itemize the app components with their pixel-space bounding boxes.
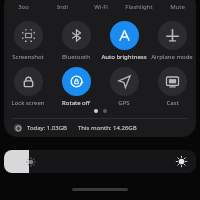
button[interactable]: Rotate off <box>52 67 100 107</box>
staticText: Airplane mode <box>151 53 193 61</box>
button[interactable]: Today: 1.03GB <box>4 119 196 137</box>
staticText: Screenshot <box>12 53 44 61</box>
staticText: Lock screen <box>11 99 45 107</box>
button[interactable]: Flashlight <box>120 1 158 13</box>
button[interactable]: Mute <box>158 1 196 13</box>
button[interactable]: Wi-Fi <box>82 1 120 13</box>
button[interactable]: Brightness <box>4 150 196 173</box>
staticText: Indi <box>57 3 68 11</box>
staticText: Mute <box>170 3 185 11</box>
staticText: 3oo <box>18 3 29 11</box>
staticText: Flashlight <box>125 3 153 11</box>
staticText: GPS <box>118 99 130 107</box>
staticText: Auto brightness <box>101 53 147 61</box>
staticText: This month: 14.26GB <box>78 124 137 132</box>
button[interactable]: Bluetooth <box>52 21 100 61</box>
staticText: Wi-Fi <box>94 3 108 11</box>
button[interactable]: Screenshot <box>4 21 52 61</box>
button[interactable]: Indi <box>43 1 82 13</box>
button[interactable]: GPS <box>100 67 148 107</box>
button[interactable]: Airplane mode <box>148 21 196 61</box>
staticText: Cast <box>166 99 179 107</box>
button[interactable]: Lock screen <box>4 67 52 107</box>
staticText: Today: 1.03GB <box>27 124 68 132</box>
button[interactable]: Auto brightness <box>100 21 148 61</box>
button[interactable]: Cast <box>148 67 196 107</box>
button[interactable]: 3oo <box>4 1 43 13</box>
staticText: Bluetooth <box>62 53 90 61</box>
staticText: Rotate off <box>62 99 90 107</box>
